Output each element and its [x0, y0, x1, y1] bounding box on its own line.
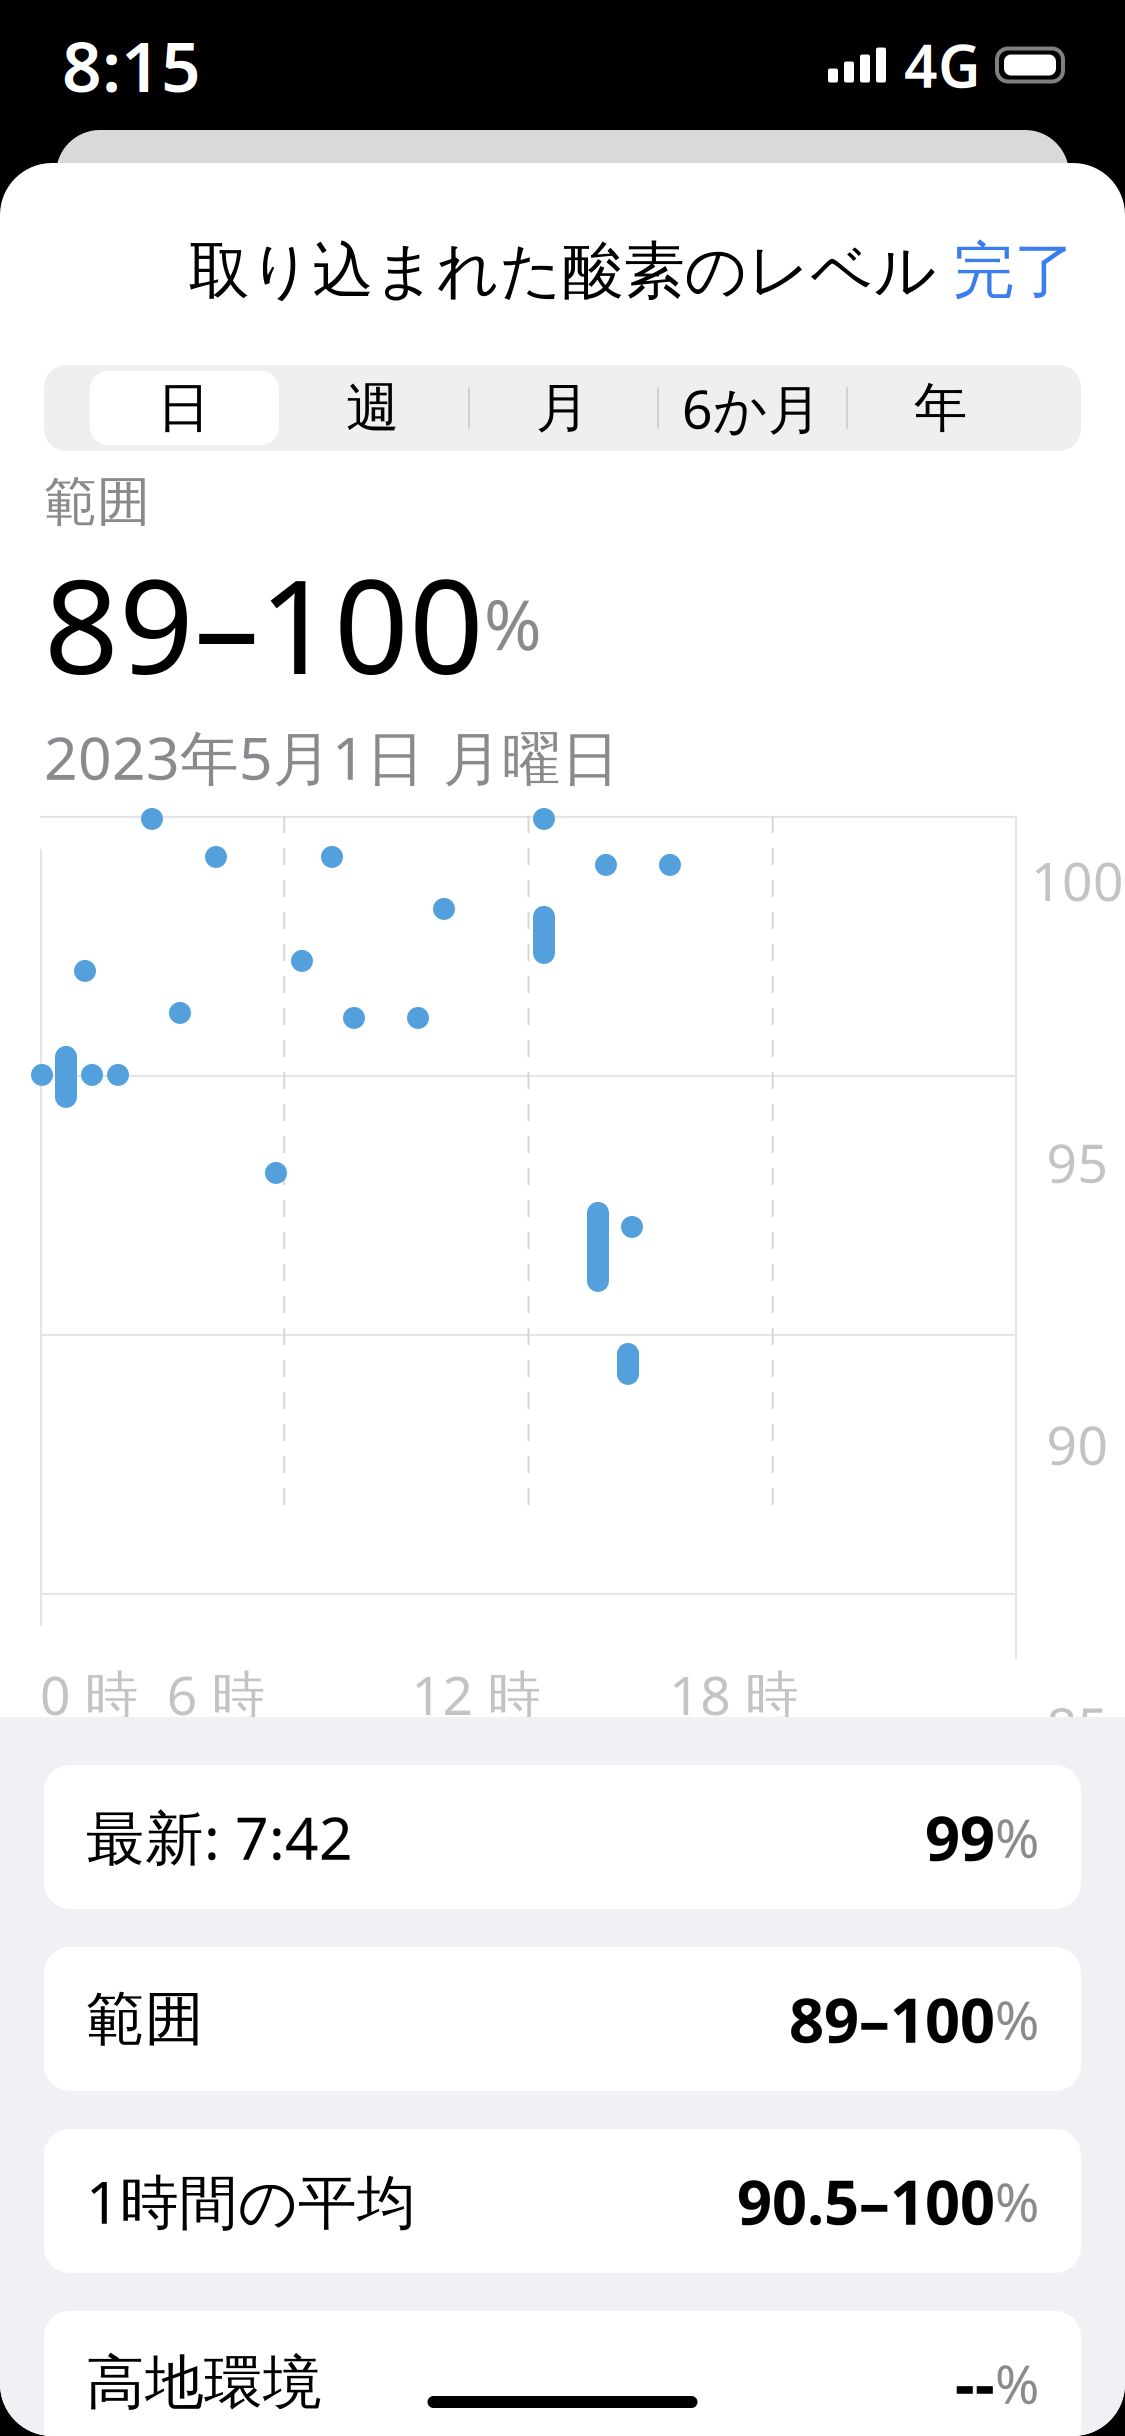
staticText: 90.5–100	[737, 2160, 995, 2242]
button[interactable]: 月	[468, 365, 657, 451]
staticText: 89–100	[44, 536, 484, 710]
button[interactable]: 完了	[925, 217, 1103, 325]
staticText: 範囲	[44, 469, 150, 534]
staticText: 99	[925, 1796, 995, 1878]
staticText: 4G	[904, 26, 981, 104]
staticText: %	[995, 1983, 1039, 2054]
button[interactable]: 高地環境	[44, 2311, 1081, 2436]
staticText: 89–100	[789, 1978, 995, 2060]
staticText: 18 時	[669, 1659, 798, 1730]
staticText: 2023年5月1日 月曜日	[44, 718, 620, 796]
staticText: 最新: 7:42	[86, 1798, 353, 1876]
staticText: %	[995, 2347, 1039, 2418]
staticText: 1時間の平均	[86, 2162, 416, 2240]
staticText: 月	[536, 375, 589, 441]
button[interactable]: 日	[90, 365, 279, 451]
staticText: 90	[1046, 1409, 1108, 1479]
staticText: 0 時	[40, 1659, 138, 1730]
button[interactable]: 週	[279, 365, 468, 451]
staticText: 完了	[953, 233, 1075, 309]
staticText: 週	[346, 375, 399, 441]
staticText: 12 時	[411, 1659, 540, 1730]
staticText: --	[955, 2342, 995, 2424]
staticText: 6 時	[167, 1659, 265, 1730]
button[interactable]: 6か月	[657, 365, 846, 451]
staticText: 8:15	[62, 19, 201, 111]
staticText: 85	[1046, 1690, 1108, 1761]
button[interactable]: 最新: 7:42	[44, 1765, 1081, 1909]
staticText: 範囲	[86, 1983, 204, 2055]
button[interactable]: 年	[846, 365, 1035, 451]
staticText: 6か月	[682, 373, 821, 443]
staticText: %	[484, 577, 542, 669]
staticText: %	[995, 2165, 1039, 2236]
staticText: %	[995, 1801, 1039, 1872]
button[interactable]: 範囲	[44, 1947, 1081, 2091]
staticText: 高地環境	[86, 2347, 322, 2419]
staticText: 95	[1046, 1127, 1108, 1198]
staticText: 日	[157, 375, 210, 441]
button[interactable]: 1時間の平均	[44, 2129, 1081, 2273]
staticText: 取り込まれた酸素のレベル	[188, 233, 936, 309]
staticText: 年	[914, 375, 967, 441]
staticText: 100	[1031, 845, 1124, 916]
